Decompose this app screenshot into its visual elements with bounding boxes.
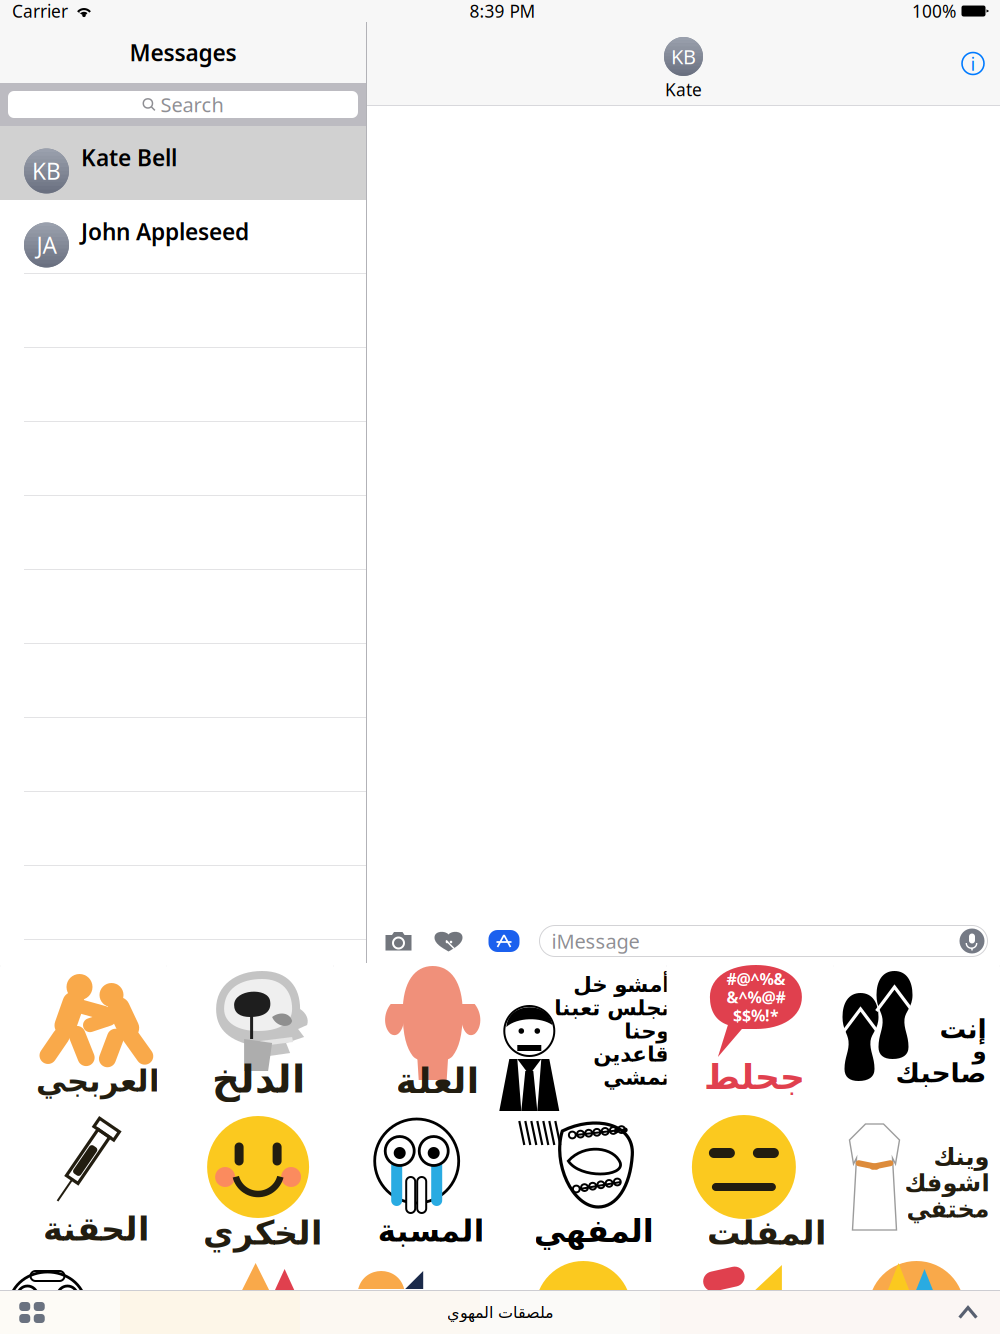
button[interactable]: Sticker العربجي bbox=[0, 963, 167, 1111]
button[interactable]: Sticker العلة bbox=[333, 963, 500, 1111]
button[interactable]: Sticker bbox=[833, 1111, 1000, 1259]
button[interactable]: Search bbox=[8, 91, 358, 118]
staticText: العربجي bbox=[35, 1064, 159, 1098]
button[interactable]: Expand bbox=[944, 1291, 992, 1334]
staticText: John Appleseed bbox=[81, 216, 249, 247]
button[interactable]: Sticker الدلخ bbox=[167, 963, 333, 1111]
button[interactable]: Sticker جحلط bbox=[667, 963, 833, 1111]
button[interactable]: Sticker المفلت bbox=[667, 1111, 833, 1259]
staticText: صاحبك bbox=[895, 1058, 986, 1088]
staticText: وينك bbox=[933, 1143, 989, 1170]
button[interactable]: App Store bbox=[488, 930, 519, 952]
staticText: KB bbox=[32, 156, 61, 186]
staticText: Search bbox=[160, 91, 223, 118]
staticText: المفلت bbox=[706, 1214, 825, 1252]
button[interactable]: Sticker المفهي bbox=[500, 1111, 667, 1259]
staticText: نجلس تعبنا bbox=[554, 996, 669, 1020]
staticText: Messages bbox=[129, 37, 236, 67]
staticText: الحقنة bbox=[42, 1210, 148, 1248]
button[interactable]: JA bbox=[0, 200, 366, 274]
button[interactable]: Sticker الحقنة bbox=[0, 1111, 167, 1259]
staticText: 100% bbox=[912, 0, 956, 22]
staticText: $$%!* bbox=[733, 1005, 779, 1026]
staticText: وحنا bbox=[624, 1019, 669, 1043]
staticText: Kate bbox=[665, 78, 702, 101]
button[interactable]: Sticker المسبة bbox=[333, 1111, 500, 1259]
button[interactable]: KB bbox=[0, 126, 366, 200]
staticText: نمشي bbox=[603, 1065, 669, 1089]
staticText: المفهي bbox=[533, 1213, 653, 1249]
staticText: و bbox=[972, 1038, 986, 1064]
staticText: KB bbox=[671, 43, 696, 70]
button[interactable]: iMessage bbox=[539, 925, 987, 956]
staticText: أمشو خل bbox=[573, 972, 669, 997]
staticText: العلة bbox=[395, 1061, 478, 1101]
staticText: Kate Bell bbox=[81, 142, 177, 173]
staticText: iMessage bbox=[551, 928, 639, 954]
staticText: الدلخ bbox=[212, 1057, 305, 1101]
staticText: قاعدين bbox=[593, 1042, 669, 1066]
staticText: 8:39 PM bbox=[469, 0, 535, 22]
staticText: المسبة bbox=[377, 1214, 484, 1248]
staticText: اشوفك bbox=[904, 1169, 989, 1197]
staticText: مختفي bbox=[906, 1196, 989, 1223]
staticText: Carrier bbox=[12, 0, 68, 22]
button[interactable]: Sticker الخكري bbox=[167, 1111, 333, 1259]
staticText: &^%@# bbox=[726, 986, 785, 1008]
staticText: الخكري bbox=[203, 1214, 322, 1252]
staticText: إنت bbox=[939, 1014, 986, 1044]
button[interactable]: Sticker bbox=[500, 963, 667, 1111]
staticText: جحلط bbox=[703, 1057, 804, 1097]
button[interactable]: Apps bbox=[8, 1291, 56, 1334]
button[interactable]: Sticker bbox=[833, 963, 1000, 1111]
staticText: #@^%& bbox=[726, 968, 785, 989]
staticText: i bbox=[970, 51, 975, 76]
button[interactable]: Details bbox=[956, 46, 990, 80]
button[interactable]: Digital Touch bbox=[434, 930, 462, 951]
staticText: ملصقات المهوي bbox=[446, 1303, 553, 1322]
button[interactable]: Camera bbox=[384, 930, 412, 951]
button[interactable]: KB bbox=[664, 37, 703, 101]
staticText: JA bbox=[36, 230, 56, 260]
